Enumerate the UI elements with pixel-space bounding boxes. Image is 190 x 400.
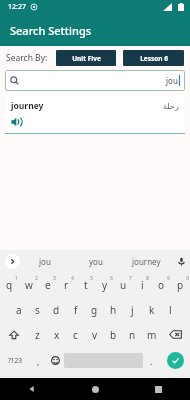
staticText: journey xyxy=(132,256,161,267)
staticText: q xyxy=(6,278,13,292)
staticText: jou xyxy=(166,75,178,86)
staticText: s xyxy=(35,303,40,317)
staticText: c xyxy=(73,328,78,342)
staticText: 5 xyxy=(90,275,93,282)
staticText: t xyxy=(84,278,88,292)
staticText: 4 xyxy=(71,275,74,282)
staticText: ?123 xyxy=(8,356,22,365)
button[interactable]: b xyxy=(104,322,123,347)
staticText: z xyxy=(35,328,40,342)
staticText: f xyxy=(74,303,78,317)
button[interactable]: journey xyxy=(121,250,172,272)
staticText: journey xyxy=(11,100,44,112)
staticText: d xyxy=(53,303,60,317)
staticText: k xyxy=(149,303,155,317)
button[interactable]: More suggestions xyxy=(5,254,20,269)
staticText: you xyxy=(89,256,103,267)
button[interactable]: journey xyxy=(5,95,185,134)
staticText: , xyxy=(37,355,40,367)
button[interactable]: Period xyxy=(143,347,160,374)
button[interactable]: f xyxy=(66,297,85,322)
button[interactable]: k xyxy=(142,297,161,322)
button[interactable]: Voice input xyxy=(172,250,190,272)
staticText: 3 xyxy=(53,275,56,282)
staticText: Search By: xyxy=(6,52,48,64)
button[interactable]: ?123 xyxy=(0,347,30,374)
other: Search xyxy=(10,76,19,85)
button[interactable]: v xyxy=(85,322,104,347)
button[interactable]: e xyxy=(38,272,57,297)
staticText: u xyxy=(120,278,127,292)
button[interactable]: u xyxy=(114,272,133,297)
button[interactable]: j xyxy=(123,297,142,322)
staticText: 9 xyxy=(167,275,170,282)
staticText: . xyxy=(150,355,153,367)
staticText: e xyxy=(45,278,51,292)
button[interactable]: Backspace xyxy=(161,322,190,347)
button[interactable]: Unit Five xyxy=(56,50,116,66)
staticText: b xyxy=(110,328,117,342)
button[interactable]: Lesson 6 xyxy=(123,50,184,66)
staticText: g xyxy=(91,303,98,317)
staticText: x xyxy=(54,328,60,342)
button[interactable]: Search xyxy=(5,70,185,91)
button[interactable]: h xyxy=(104,297,123,322)
staticText: 8 xyxy=(146,275,149,282)
staticText: i xyxy=(141,278,144,292)
button[interactable]: Emoji xyxy=(47,347,64,374)
staticText: m xyxy=(147,328,157,342)
staticText: j xyxy=(131,303,134,317)
staticText: o xyxy=(158,278,165,292)
staticText: p xyxy=(177,278,184,292)
staticText: رحلة xyxy=(163,102,179,111)
staticText: 6 xyxy=(110,275,113,282)
button[interactable]: c xyxy=(66,322,85,347)
button[interactable]: Recent apps xyxy=(127,378,190,400)
staticText: 2 xyxy=(35,275,38,282)
staticText: Lesson 6 xyxy=(140,54,168,63)
staticText: a xyxy=(16,303,22,317)
button[interactable]: s xyxy=(28,297,47,322)
button[interactable]: Comma xyxy=(30,347,47,374)
button[interactable]: n xyxy=(123,322,142,347)
button[interactable]: Play pronunciation xyxy=(10,115,24,129)
staticText: r xyxy=(64,278,69,292)
staticText: v xyxy=(92,328,98,342)
button[interactable]: jou xyxy=(20,250,70,272)
button[interactable]: q xyxy=(0,272,19,297)
staticText: Search Settings xyxy=(10,23,92,38)
button[interactable]: l xyxy=(161,297,180,322)
staticText: y xyxy=(102,278,108,292)
button[interactable]: y xyxy=(95,272,114,297)
button[interactable]: Shift xyxy=(0,322,28,347)
button[interactable]: Back xyxy=(0,378,64,400)
staticText: 1 xyxy=(15,275,18,282)
staticText: l xyxy=(169,303,172,317)
button[interactable]: d xyxy=(47,297,66,322)
button[interactable]: you xyxy=(70,250,121,272)
staticText: n xyxy=(129,328,136,342)
button[interactable]: p xyxy=(171,272,190,297)
button[interactable]: r xyxy=(57,272,76,297)
staticText: Unit Five xyxy=(72,54,101,63)
button[interactable]: Done xyxy=(160,347,190,374)
staticText: 0 xyxy=(186,275,189,282)
button[interactable]: o xyxy=(152,272,171,297)
button[interactable]: i xyxy=(133,272,152,297)
staticText: 7 xyxy=(129,275,132,282)
staticText: 12:27 xyxy=(8,2,26,12)
button[interactable]: w xyxy=(19,272,38,297)
button[interactable]: t xyxy=(76,272,95,297)
button[interactable]: x xyxy=(47,322,66,347)
button[interactable]: m xyxy=(142,322,161,347)
staticText: w xyxy=(25,278,33,292)
button[interactable]: z xyxy=(28,322,47,347)
button[interactable]: Home xyxy=(64,378,127,400)
button[interactable]: g xyxy=(85,297,104,322)
button[interactable]: a xyxy=(9,297,28,322)
staticText: h xyxy=(110,303,117,317)
staticText: jou xyxy=(39,256,51,267)
